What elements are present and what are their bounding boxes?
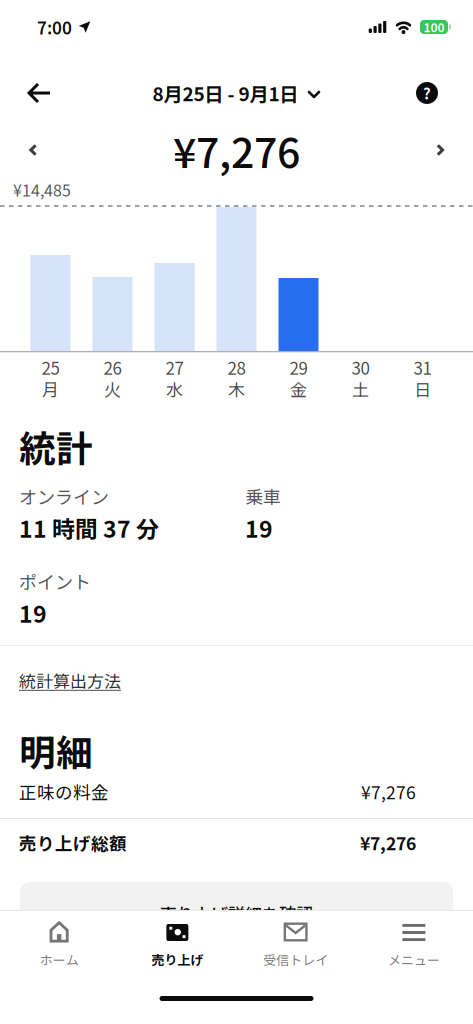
staticText: ホーム: [40, 950, 79, 969]
button[interactable]: ヘルプ: [416, 82, 438, 104]
staticText: 水: [166, 377, 183, 401]
button[interactable]: 統計算出方法: [0, 668, 473, 693]
button[interactable]: 8月25日 - 9月1日: [152, 79, 320, 107]
staticText: 31: [413, 355, 431, 380]
staticText: 統計算出方法: [19, 668, 121, 693]
staticText: ¥7,276: [360, 830, 416, 855]
button[interactable]: 売り上げ詳細を確認: [20, 882, 453, 940]
staticText: 金: [290, 377, 307, 401]
staticText: オンライン: [19, 483, 109, 509]
staticText: 正味の料金: [19, 779, 109, 804]
button[interactable]: メニュー: [355, 919, 473, 969]
staticText: 100: [423, 18, 444, 36]
staticText: 統計: [19, 420, 93, 473]
staticText: 土: [352, 377, 369, 401]
staticText: ?: [423, 82, 431, 104]
staticText: 売り上げ: [151, 950, 203, 969]
staticText: 30: [351, 355, 369, 380]
staticText: 8月25日 - 9月1日: [152, 79, 298, 107]
staticText: 29: [289, 355, 307, 380]
button[interactable]: ホーム: [0, 919, 118, 969]
staticText: 月: [42, 377, 59, 401]
staticText: 日: [414, 377, 431, 401]
staticText: 明細: [19, 724, 93, 777]
staticText: ¥14,485: [13, 178, 71, 201]
staticText: ポイント: [19, 568, 91, 594]
button[interactable]: 戻る: [27, 82, 51, 104]
staticText: 27: [165, 355, 183, 380]
button[interactable]: 受信トレイ: [236, 919, 355, 969]
staticText: 7:00: [37, 15, 72, 39]
staticText: 火: [104, 377, 121, 401]
staticText: 26: [103, 355, 121, 380]
staticText: 受信トレイ: [263, 950, 328, 969]
staticText: 木: [228, 377, 245, 401]
staticText: メニュー: [388, 950, 440, 969]
staticText: 売り上げ詳細を確認: [160, 901, 313, 926]
staticText: 25: [41, 355, 59, 380]
staticText: ¥7,276: [361, 779, 416, 804]
button[interactable]: 前の週: [29, 143, 37, 156]
staticText: 売り上げ総額: [19, 830, 127, 855]
staticText: 乗車: [245, 483, 281, 509]
staticText: 19: [245, 511, 273, 544]
staticText: ¥7,276: [173, 120, 300, 180]
staticText: 11 時間 37 分: [19, 511, 159, 544]
staticText: 19: [19, 596, 47, 629]
button[interactable]: 売り上げ: [118, 919, 236, 969]
staticText: 28: [227, 355, 245, 380]
button[interactable]: 次の週: [436, 143, 444, 156]
